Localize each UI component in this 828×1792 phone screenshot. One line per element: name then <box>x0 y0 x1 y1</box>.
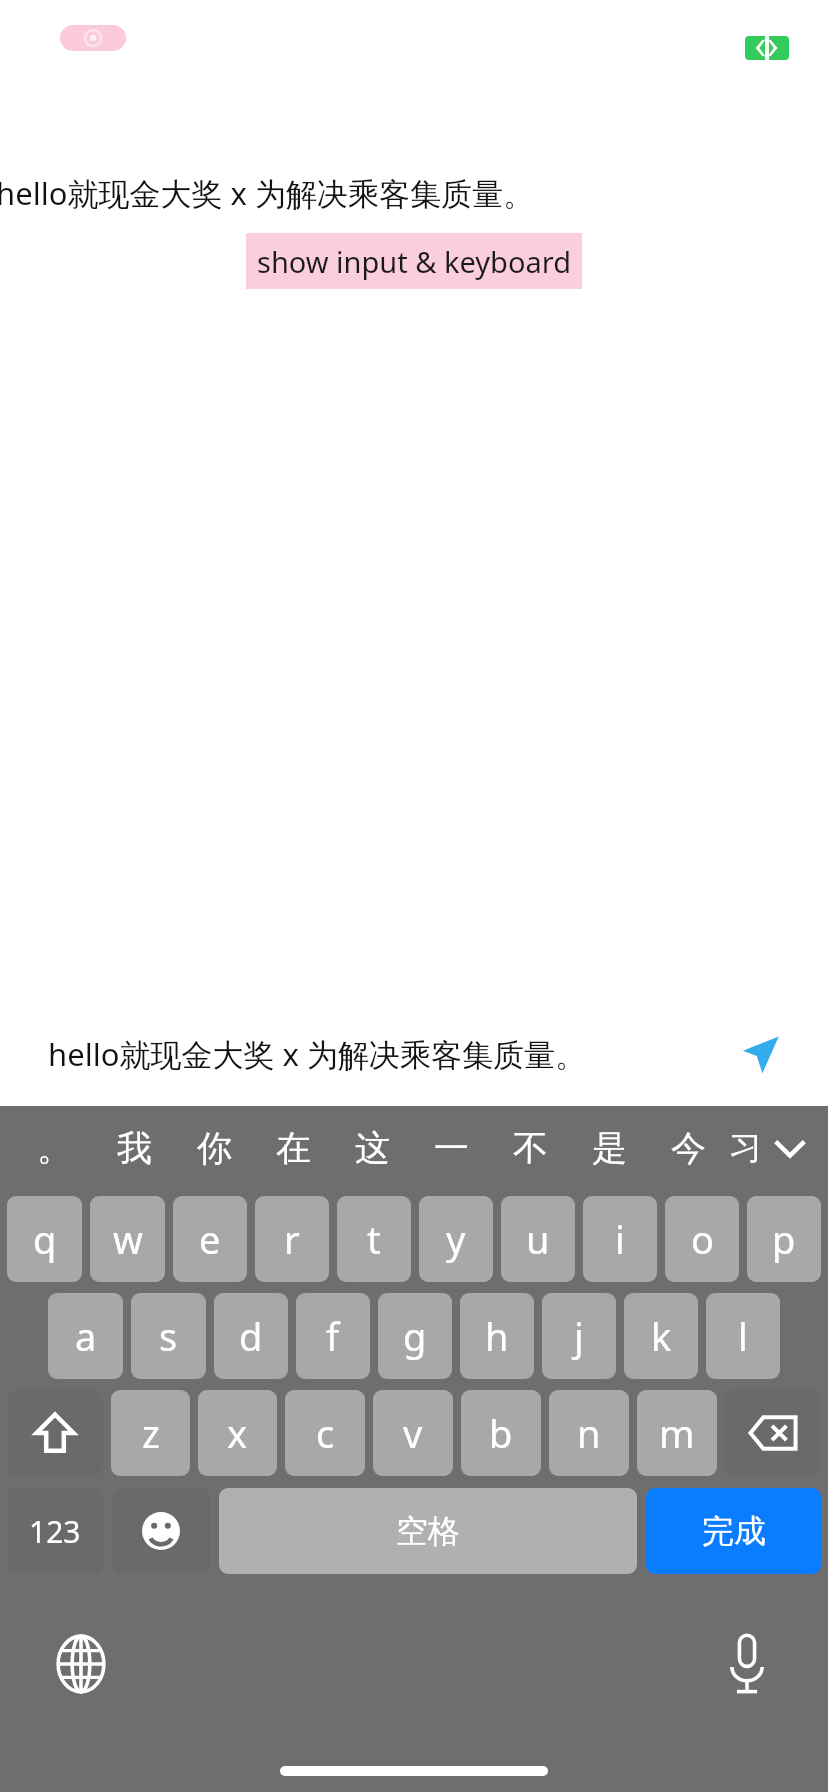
button[interactable]: show input & keyboard <box>246 233 582 289</box>
button[interactable]: j <box>542 1293 616 1379</box>
button[interactable]: b <box>461 1390 541 1476</box>
button[interactable]: g <box>378 1293 452 1379</box>
staticText: q <box>33 1213 57 1265</box>
staticText: 习 <box>729 1127 762 1169</box>
button[interactable]: t <box>337 1196 411 1282</box>
staticText: i <box>615 1213 625 1265</box>
button[interactable]: 。 <box>14 1106 94 1190</box>
button[interactable]: 一 <box>412 1106 491 1190</box>
button[interactable]: p <box>747 1196 821 1282</box>
staticText: t <box>367 1213 381 1265</box>
staticText: 今 <box>671 1126 706 1170</box>
button[interactable]: q <box>7 1196 82 1282</box>
staticText: hello就现金大奖 x 为解决乘客集质量。 <box>48 1033 732 1075</box>
staticText: x <box>227 1407 248 1459</box>
staticText: 是 <box>592 1126 627 1170</box>
button[interactable]: Send <box>732 1026 788 1082</box>
staticText: a <box>75 1310 97 1362</box>
staticText: hello就现金大奖 x 为解决乘客集质量。 <box>0 172 534 214</box>
button[interactable]: z <box>111 1390 190 1476</box>
button[interactable]: Hide suggestions <box>762 1106 818 1190</box>
staticText: s <box>159 1310 178 1362</box>
button[interactable]: v <box>373 1390 453 1476</box>
button[interactable]: l <box>706 1293 780 1379</box>
button[interactable]: 不 <box>491 1106 570 1190</box>
button[interactable]: h <box>460 1293 534 1379</box>
button[interactable]: 在 <box>254 1106 333 1190</box>
button[interactable]: Voice input <box>712 1629 782 1699</box>
button[interactable]: Backspace <box>725 1390 821 1476</box>
staticText: j <box>574 1310 584 1362</box>
staticText: z <box>142 1407 160 1459</box>
staticText: show input & keyboard <box>257 242 571 281</box>
button[interactable]: 是 <box>570 1106 649 1190</box>
button[interactable]: 习 <box>728 1106 762 1190</box>
button[interactable]: e <box>173 1196 247 1282</box>
staticText: o <box>691 1213 714 1265</box>
button[interactable]: o <box>665 1196 739 1282</box>
staticText: m <box>659 1407 695 1459</box>
button[interactable]: k <box>624 1293 698 1379</box>
staticText: 一 <box>434 1126 469 1170</box>
staticText: h <box>485 1310 509 1362</box>
staticText: 不 <box>513 1126 548 1170</box>
staticText: u <box>526 1213 550 1265</box>
button[interactable]: y <box>419 1196 493 1282</box>
button[interactable]: x <box>198 1390 277 1476</box>
staticText: d <box>239 1310 263 1362</box>
button[interactable]: 今 <box>649 1106 728 1190</box>
staticText: v <box>403 1407 423 1459</box>
button[interactable]: 我 <box>94 1106 174 1190</box>
button[interactable]: i <box>583 1196 657 1282</box>
button[interactable]: Recording indicator <box>60 25 126 51</box>
button[interactable]: n <box>549 1390 629 1476</box>
button[interactable]: f <box>296 1293 370 1379</box>
button[interactable]: s <box>131 1293 206 1379</box>
staticText: y <box>446 1213 466 1265</box>
button[interactable]: r <box>255 1196 329 1282</box>
button[interactable]: a <box>48 1293 123 1379</box>
staticText: 这 <box>355 1126 390 1170</box>
staticText: 在 <box>276 1126 311 1170</box>
button[interactable]: Change keyboard language <box>46 1629 116 1699</box>
button[interactable]: Developer badge <box>745 36 789 60</box>
staticText: b <box>489 1407 513 1459</box>
button[interactable]: m <box>637 1390 717 1476</box>
staticText: 123 <box>29 1511 81 1552</box>
button[interactable]: u <box>501 1196 575 1282</box>
staticText: 我 <box>117 1126 152 1170</box>
staticText: 你 <box>197 1126 232 1170</box>
staticText: k <box>651 1310 672 1362</box>
staticText: 空格 <box>396 1511 460 1551</box>
staticText: g <box>403 1310 427 1362</box>
staticText: w <box>113 1213 143 1265</box>
staticText: l <box>738 1310 748 1362</box>
button[interactable]: 空格 <box>219 1488 637 1574</box>
staticText: 完成 <box>702 1511 766 1551</box>
staticText: c <box>316 1407 335 1459</box>
button[interactable]: w <box>90 1196 165 1282</box>
button[interactable]: 你 <box>174 1106 254 1190</box>
staticText: e <box>199 1213 221 1265</box>
button[interactable]: d <box>214 1293 288 1379</box>
staticText: p <box>772 1213 796 1265</box>
button[interactable]: 这 <box>333 1106 412 1190</box>
button[interactable]: c <box>285 1390 365 1476</box>
button[interactable]: 123 <box>7 1488 103 1574</box>
staticText: r <box>284 1213 300 1265</box>
staticText: f <box>326 1310 340 1362</box>
staticText: 。 <box>37 1126 72 1170</box>
button[interactable]: Shift <box>7 1390 103 1476</box>
button[interactable]: 完成 <box>646 1488 821 1574</box>
button[interactable]: Emoji <box>112 1488 210 1574</box>
staticText: n <box>577 1407 601 1459</box>
